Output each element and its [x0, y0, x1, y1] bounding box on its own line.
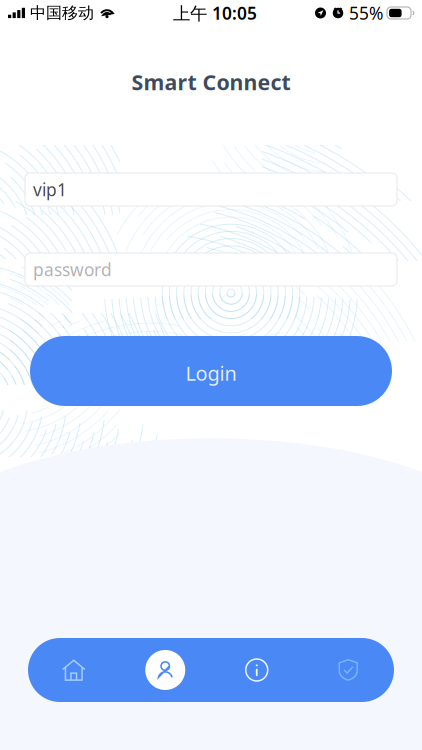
- button[interactable]: Profile: [119, 638, 211, 702]
- button[interactable]: Info: [211, 638, 302, 702]
- button[interactable]: Login: [30, 336, 392, 406]
- staticText: 中国移动: [30, 3, 94, 23]
- button[interactable]: Security: [302, 638, 394, 702]
- staticText: vip1: [33, 178, 67, 201]
- staticText: 上午 10:05: [173, 1, 257, 24]
- staticText: Smart Connect: [131, 68, 290, 96]
- staticText: Login: [185, 360, 236, 386]
- staticText: 55%: [349, 1, 383, 24]
- staticText: password: [33, 258, 112, 281]
- button[interactable]: Home: [28, 638, 119, 702]
